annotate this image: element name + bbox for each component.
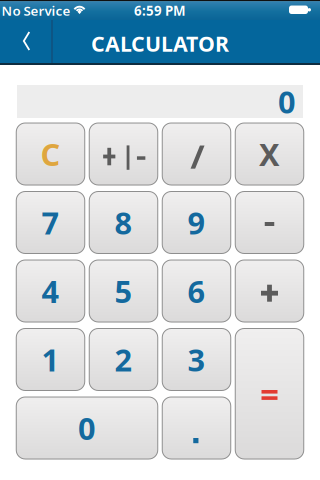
staticText: 0 <box>278 81 296 122</box>
button[interactable]: Decimal point <box>162 397 231 459</box>
button[interactable]: Multiply <box>235 123 304 185</box>
staticText: 9 <box>187 202 205 243</box>
button[interactable]: Clear <box>16 123 85 185</box>
button[interactable]: 6 <box>162 260 231 322</box>
staticText: 5 <box>114 271 132 311</box>
staticText: 1 <box>41 339 59 380</box>
button[interactable]: 8 <box>89 191 158 253</box>
button[interactable]: 2 <box>89 328 158 390</box>
staticText: 0 <box>78 408 96 448</box>
button[interactable]: Plus <box>235 260 304 322</box>
button[interactable]: Equals <box>235 328 304 459</box>
button[interactable]: 9 <box>162 191 231 253</box>
button[interactable]: Divide <box>162 123 231 185</box>
staticText: 6:59 PM <box>134 2 186 19</box>
button[interactable]: Plus minus <box>89 123 158 185</box>
button[interactable]: 5 <box>89 260 158 322</box>
button[interactable]: Back <box>0 20 52 63</box>
staticText: X <box>259 134 280 174</box>
staticText: C <box>40 134 60 174</box>
button[interactable]: 0 <box>16 397 158 459</box>
button[interactable]: 1 <box>16 328 85 390</box>
staticText: 3 <box>187 339 205 380</box>
button[interactable]: 7 <box>16 191 85 253</box>
staticText: 7 <box>41 202 59 243</box>
staticText: CALCULATOR <box>91 29 229 58</box>
staticText: 6 <box>187 271 205 311</box>
button[interactable]: Minus <box>235 191 304 253</box>
staticText: 4 <box>41 271 59 311</box>
staticText: 8 <box>114 202 132 243</box>
staticText: 2 <box>114 339 132 380</box>
button[interactable]: 4 <box>16 260 85 322</box>
staticText: No Service <box>1 2 70 19</box>
button[interactable]: 3 <box>162 328 231 390</box>
